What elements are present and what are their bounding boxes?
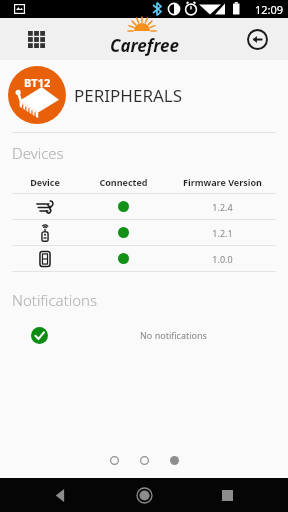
staticText: No notifications [140, 329, 207, 341]
button[interactable]: Back [39, 478, 83, 512]
staticText: Devices [12, 143, 64, 163]
staticText: PERIPHERALS [74, 84, 183, 107]
button[interactable]: Page 1 [104, 450, 124, 470]
button[interactable]: Apps menu [20, 23, 52, 55]
button[interactable]: 1.0.0 [12, 246, 276, 271]
button[interactable]: Page 2 [134, 450, 154, 470]
staticText: Connected [99, 176, 148, 188]
staticText: 1.0.0 [212, 253, 233, 265]
staticText: 1.2.1 [212, 227, 233, 239]
button[interactable]: No notifications [0, 320, 288, 350]
button[interactable]: Page 3 [164, 450, 184, 470]
button[interactable]: Home [122, 478, 166, 512]
staticText: 12:09 [255, 2, 284, 17]
button[interactable]: Recent apps [205, 478, 249, 512]
button[interactable]: BT12 awning [8, 66, 66, 124]
staticText: BT12 [24, 75, 51, 90]
staticText: Carefree [110, 34, 179, 57]
button[interactable]: 1.2.4 [12, 194, 276, 219]
button[interactable]: Back [242, 24, 272, 54]
staticText: Firmware Version [183, 176, 262, 188]
staticText: 1.2.4 [212, 201, 233, 213]
staticText: Device [30, 176, 60, 188]
button[interactable]: 1.2.1 [12, 220, 276, 245]
staticText: Notifications [12, 290, 98, 310]
